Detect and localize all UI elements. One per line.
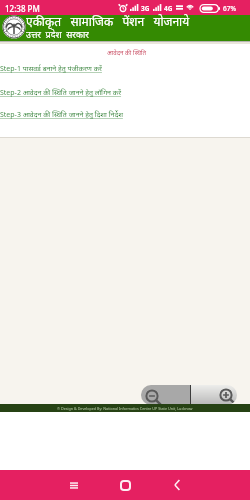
staticText: Step-1 पासवर्ड बनाने हेतु पंजीकरण करें bbox=[0, 64, 102, 74]
staticText: © Design & Developed By: National Inform… bbox=[57, 406, 193, 411]
button[interactable]: Zoom in bbox=[191, 385, 237, 405]
button[interactable]: Recents bbox=[62, 473, 86, 497]
staticText: 67% bbox=[223, 4, 236, 13]
button[interactable]: Step-2 आवेदन की स्थिति जानने हेतु लॉगिन … bbox=[0, 88, 122, 98]
staticText: एकीकृत सामाजिक पेंशन योजनाये bbox=[26, 13, 190, 29]
button[interactable]: Back bbox=[165, 473, 189, 497]
staticText: 3G bbox=[141, 4, 150, 13]
staticText: 4G bbox=[164, 4, 173, 13]
button[interactable]: Zoom out bbox=[141, 385, 191, 405]
staticText: 12:38 PM bbox=[5, 3, 40, 14]
staticText: Step-2 आवेदन की स्थिति जानने हेतु लॉगिन … bbox=[0, 88, 122, 98]
staticText: उत्तर प्रदेश सरकार bbox=[26, 28, 89, 38]
button[interactable]: Step-3 आवेदन की स्थिति जानने हेतु दिशा न… bbox=[0, 110, 123, 120]
staticText: आवेदन की स्थिति bbox=[0, 48, 146, 56]
button[interactable]: Home bbox=[113, 473, 137, 497]
staticText: Step-3 आवेदन की स्थिति जानने हेतु दिशा न… bbox=[0, 110, 123, 120]
button[interactable]: Step-1 पासवर्ड बनाने हेतु पंजीकरण करें bbox=[0, 64, 102, 74]
